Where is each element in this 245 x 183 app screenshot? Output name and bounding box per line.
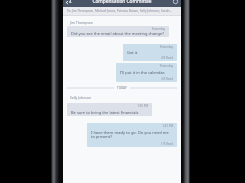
staticText: 1:43 PM xyxy=(91,124,173,128)
staticText: I'll put it in the calendar. xyxy=(120,70,165,75)
staticText: Sally Johnson xyxy=(70,95,92,100)
staticText: Be sure to bring the latest financials xyxy=(71,110,139,115)
staticText: 3/5 Read xyxy=(127,56,173,60)
button[interactable]: Back xyxy=(64,0,74,5)
staticText: Got it. xyxy=(127,50,139,55)
staticText: Compensation Committee xyxy=(74,0,170,5)
staticText: 1:30 PM xyxy=(71,104,148,108)
staticText: 4 xyxy=(69,0,72,5)
staticText: Did you see the email about the meeting … xyxy=(71,31,164,36)
staticText: Yesterday xyxy=(127,45,173,49)
button[interactable]: 1:30 PM xyxy=(67,103,152,116)
staticText: TODAY xyxy=(117,86,127,90)
staticText: 1/5 Read xyxy=(91,142,173,146)
button[interactable]: Yesterday xyxy=(116,63,177,82)
button[interactable]: Yesterday xyxy=(123,44,177,61)
staticText: I have them ready to go. Do you need me … xyxy=(91,130,173,140)
staticText: Jim Thompson xyxy=(70,20,93,25)
staticText: To: Jim Thompson, Michael Jones, Patrici… xyxy=(67,9,172,13)
staticText: Yesterday xyxy=(71,27,165,31)
staticText: Yesterday xyxy=(120,64,173,68)
staticText: 3/5 Read xyxy=(120,77,173,81)
button[interactable]: 1:43 PM xyxy=(87,123,177,147)
button[interactable]: Yesterday xyxy=(67,26,169,37)
button[interactable]: Conversation info xyxy=(170,0,180,5)
